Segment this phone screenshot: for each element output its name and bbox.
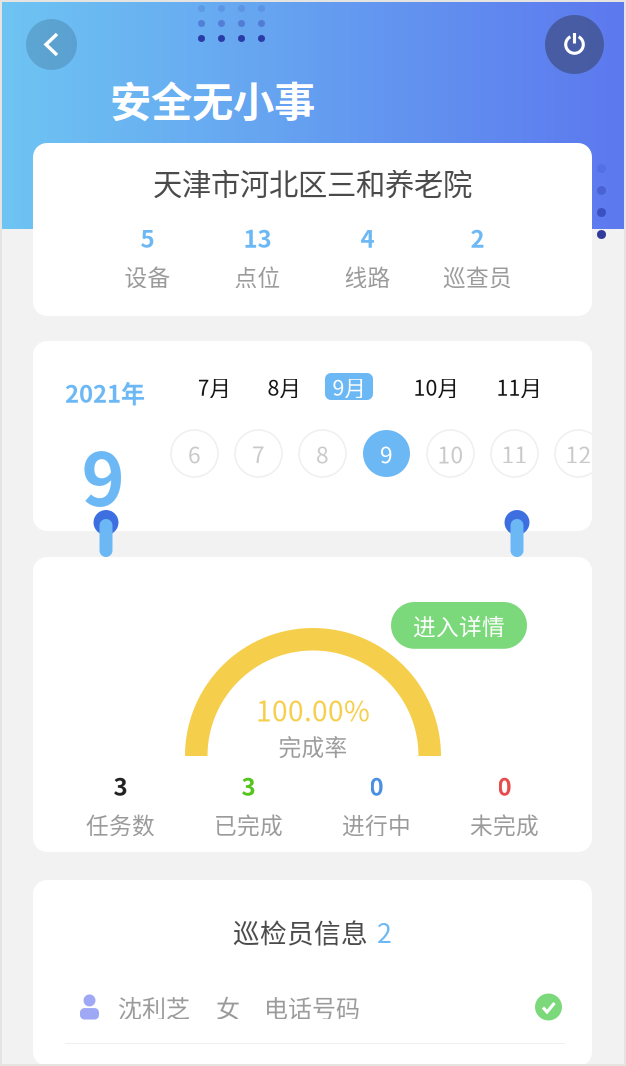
button[interactable]: 8 <box>299 430 346 477</box>
button[interactable]: Back <box>26 19 77 70</box>
button[interactable]: 7 <box>235 430 282 477</box>
staticText: 8 <box>316 437 329 470</box>
staticText: 10 <box>437 437 463 470</box>
button[interactable]: 9月 <box>325 373 373 400</box>
button[interactable]: 10月 <box>408 373 464 400</box>
staticText: 7月 <box>197 371 230 402</box>
button[interactable]: 9 <box>363 430 410 477</box>
button[interactable]: 6 <box>171 430 218 477</box>
staticText: 0 <box>497 768 511 803</box>
staticText: 9 <box>380 437 393 470</box>
staticText: 安全无小事 <box>110 69 315 129</box>
staticText: 巡查员 <box>443 260 512 293</box>
staticText: 6 <box>188 437 201 470</box>
staticText: 13 <box>243 220 271 255</box>
staticText: 巡检员信息 <box>233 912 368 951</box>
staticText: 100.00% <box>256 689 370 729</box>
staticText: 4 <box>360 220 374 255</box>
staticText: 电话号码 <box>264 990 360 1024</box>
staticText: 11 <box>501 437 527 470</box>
button[interactable]: 12 <box>555 430 602 477</box>
staticText: 2 <box>470 220 484 255</box>
staticText: 沈利芝 <box>118 990 190 1024</box>
staticText: 7 <box>252 437 265 470</box>
button[interactable]: 进入详情 <box>391 602 527 649</box>
staticText: 天津市河北区三和养老院 <box>153 161 472 203</box>
staticText: 设备 <box>124 260 170 293</box>
button[interactable]: 11 <box>491 430 538 477</box>
button[interactable]: 沈利芝 <box>79 980 562 1034</box>
staticText: 12 <box>565 437 591 470</box>
button[interactable]: 10 <box>427 430 474 477</box>
staticText: 2 <box>377 912 392 951</box>
staticText: 0 <box>369 768 383 803</box>
staticText: 进入详情 <box>413 609 505 642</box>
staticText: 9 <box>81 421 124 527</box>
staticText: 3 <box>113 768 127 803</box>
staticText: 5 <box>140 220 154 255</box>
staticText: 进行中 <box>342 808 411 841</box>
button[interactable]: Power <box>545 15 604 74</box>
button[interactable]: 11月 <box>491 373 547 400</box>
staticText: 点位 <box>234 260 280 293</box>
staticText: 10月 <box>413 371 458 402</box>
staticText: 未完成 <box>470 808 539 841</box>
staticText: 线路 <box>344 260 390 293</box>
staticText: 9月 <box>332 371 365 402</box>
staticText: 女 <box>216 990 240 1024</box>
staticText: 任务数 <box>86 808 155 841</box>
staticText: 11月 <box>496 371 541 402</box>
button[interactable]: 8月 <box>260 373 308 400</box>
button[interactable]: 7月 <box>190 373 238 400</box>
staticText: 8月 <box>267 371 300 402</box>
staticText: 完成率 <box>278 729 347 762</box>
staticText: 3 <box>241 768 255 803</box>
staticText: 2021年 <box>65 375 145 410</box>
staticText: 已完成 <box>214 808 283 841</box>
